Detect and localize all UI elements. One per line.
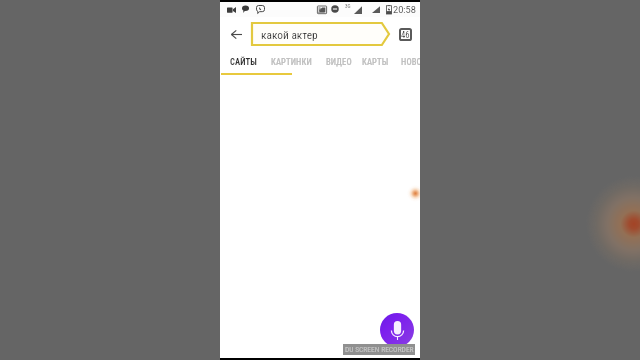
button[interactable]: САЙТЫ (225, 52, 262, 71)
staticText: 20:58 (393, 4, 416, 15)
staticText: КАРТЫ (362, 57, 389, 67)
button[interactable]: ВИДЕО (321, 52, 357, 71)
button[interactable]: Back (223, 21, 249, 47)
staticText: НОВОСТИ (401, 57, 420, 67)
button[interactable]: КАРТЫ (357, 52, 394, 71)
button[interactable]: НОВОСТИ (396, 52, 420, 71)
button[interactable]: какой актер (251, 22, 390, 46)
staticText: САЙТЫ (230, 57, 257, 67)
staticText: какой актер (261, 28, 318, 41)
staticText: 46 (401, 30, 410, 40)
staticText: 3G (345, 3, 351, 9)
button[interactable]: КАРТИНКИ (266, 52, 317, 71)
staticText: DU SCREEN RECORDER (345, 345, 414, 354)
button[interactable]: Open tabs (392, 20, 418, 48)
staticText: КАРТИНКИ (271, 57, 312, 67)
button[interactable]: Voice search (380, 313, 414, 347)
staticText: ВИДЕО (326, 57, 352, 67)
